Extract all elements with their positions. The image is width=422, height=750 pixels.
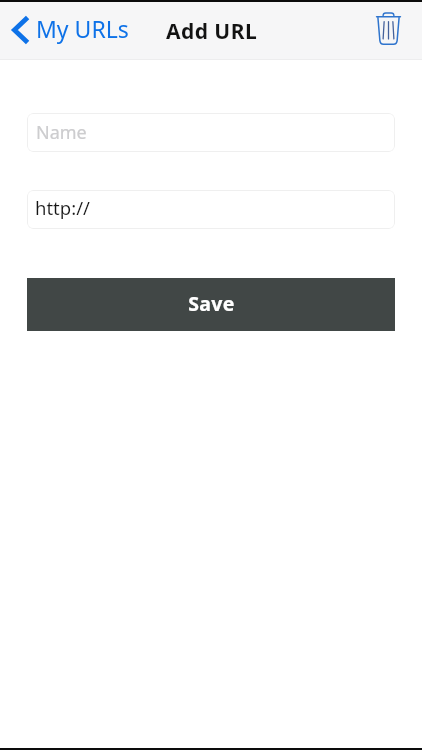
button[interactable]: Save	[27, 278, 395, 331]
staticText: Save	[188, 290, 235, 317]
button[interactable]: Delete	[371, 6, 405, 50]
staticText: http://	[35, 195, 90, 220]
button[interactable]: http://	[27, 190, 395, 229]
button[interactable]: My URLs	[0, 9, 139, 53]
staticText: Add URL	[166, 17, 258, 46]
staticText: My URLs	[36, 13, 129, 44]
staticText: Name	[36, 120, 87, 145]
button[interactable]: Name	[27, 113, 395, 152]
